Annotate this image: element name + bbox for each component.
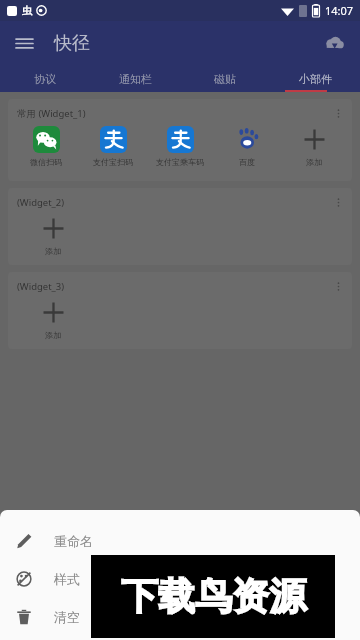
button[interactable]: (Widget_3)	[8, 272, 352, 349]
staticText: 常用 (Widget_1)	[17, 107, 86, 120]
button[interactable]: 添加	[22, 299, 84, 340]
button[interactable]: 重命名	[0, 522, 360, 560]
button[interactable]: 磁贴	[180, 65, 270, 92]
button[interactable]: 清空	[0, 598, 360, 636]
staticText: 磁贴	[214, 72, 236, 86]
button[interactable]: 添加	[283, 126, 345, 167]
staticText: 百度	[239, 157, 255, 167]
staticText: 协议	[34, 72, 56, 86]
button[interactable]: More options	[328, 278, 348, 294]
staticText: 虫	[22, 4, 32, 17]
staticText: 重命名	[54, 533, 93, 549]
staticText: 清空	[54, 609, 80, 625]
staticText: 14:07	[325, 3, 354, 18]
button[interactable]: 微信扫码	[15, 126, 77, 167]
staticText: (Widget_2)	[17, 196, 65, 209]
button[interactable]: 样式	[0, 560, 360, 598]
button[interactable]: (Widget_2)	[8, 188, 352, 265]
staticText: 添加	[45, 246, 61, 256]
staticText: 添加	[45, 330, 61, 340]
button[interactable]: 添加	[22, 215, 84, 256]
staticText: 支付宝乘车码	[156, 157, 204, 167]
button[interactable]: More options	[328, 105, 348, 121]
staticText: 微信扫码	[30, 157, 62, 167]
staticText: (Widget_3)	[17, 280, 65, 293]
button[interactable]: 支付宝乘车码	[149, 126, 211, 167]
staticText: 样式	[54, 571, 80, 587]
button[interactable]: 协议	[0, 65, 90, 92]
staticText: 通知栏	[119, 72, 152, 86]
staticText: 小部件	[299, 72, 332, 86]
staticText: 快径	[54, 32, 90, 55]
staticText: 下载鸟资源	[121, 573, 306, 620]
button[interactable]: 支付宝扫码	[82, 126, 144, 167]
button[interactable]: Menu	[5, 24, 43, 62]
button[interactable]: 通知栏	[90, 65, 180, 92]
button[interactable]: 小部件	[270, 65, 360, 92]
button[interactable]: Download	[317, 26, 351, 60]
staticText: 支付宝扫码	[93, 157, 133, 167]
button[interactable]: 常用 (Widget_1)	[8, 99, 352, 181]
button[interactable]: More options	[328, 194, 348, 210]
staticText: 添加	[306, 157, 322, 167]
button[interactable]: 百度	[216, 126, 278, 167]
